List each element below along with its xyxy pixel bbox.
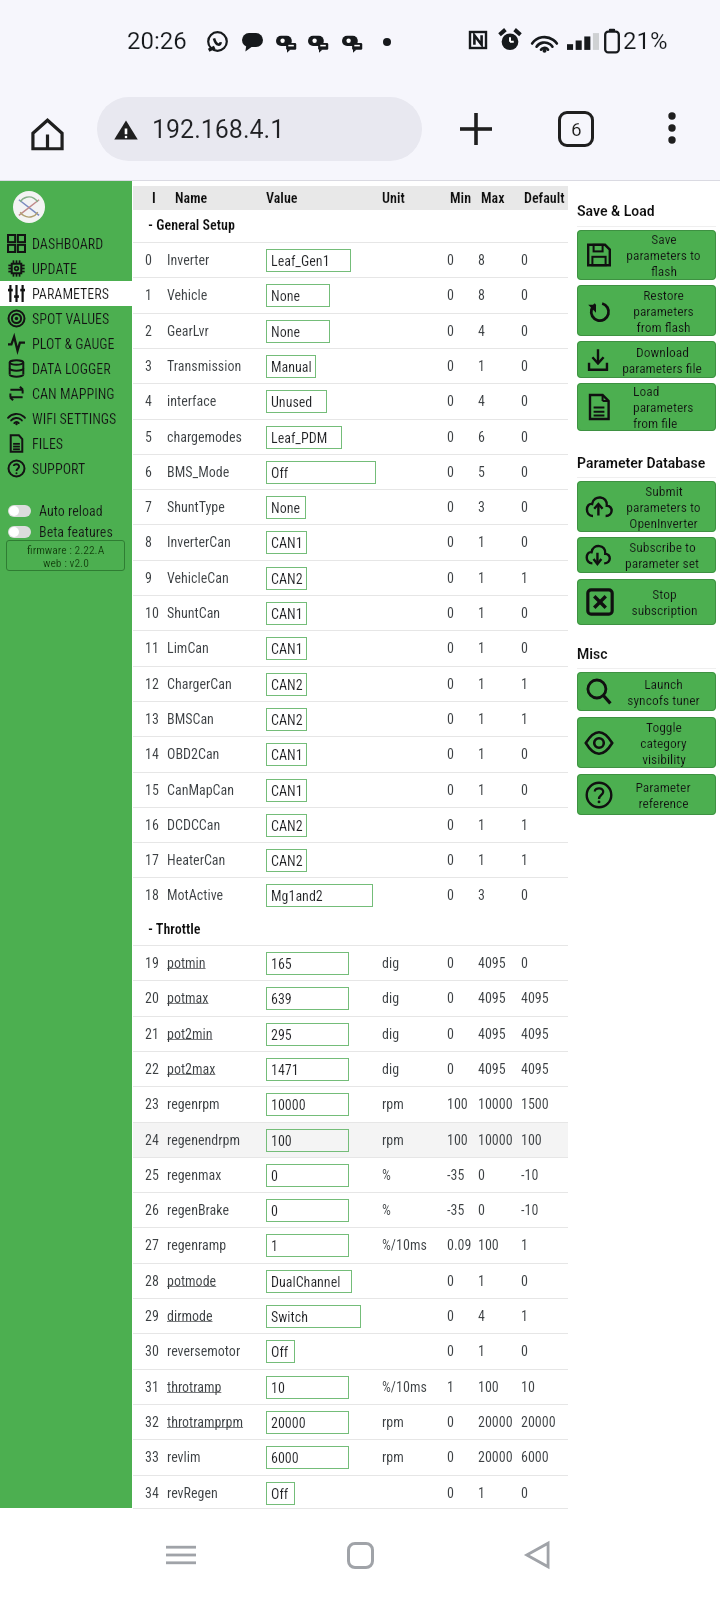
button[interactable]: 11 (133, 631, 568, 665)
button[interactable]: DATA LOGGER (0, 356, 132, 381)
button[interactable]: New tab (450, 103, 502, 155)
staticText: PARAMETERS (32, 286, 109, 302)
staticText: regenendrpm (167, 1132, 240, 1148)
button[interactable]: More options (646, 102, 698, 154)
staticText: 0 (447, 1308, 454, 1324)
button[interactable]: FILES (0, 431, 132, 456)
button[interactable]: 18 (133, 878, 568, 912)
staticText: 0 (447, 287, 454, 303)
button[interactable]: Auto reload (0, 500, 132, 521)
button[interactable]: 34 (133, 1476, 568, 1510)
button[interactable]: 20 (133, 981, 568, 1015)
staticText: pot2min (167, 1026, 213, 1042)
button[interactable]: 32 (133, 1405, 568, 1439)
staticText: web : v2.0 (43, 556, 89, 569)
button[interactable]: 31 (133, 1370, 568, 1404)
staticText: DASHBOARD (32, 236, 104, 252)
button[interactable]: 33 (133, 1440, 568, 1474)
button[interactable]: 1 (133, 278, 568, 312)
button[interactable]: SPOT VALUES (0, 306, 132, 331)
staticText: 0 (478, 1202, 485, 1218)
button[interactable]: 30 (133, 1334, 568, 1368)
button[interactable]: CAN MAPPING (0, 381, 132, 406)
button[interactable]: PARAMETERS (0, 281, 132, 306)
staticText: regenrpm (167, 1096, 220, 1112)
button[interactable]: 22 (133, 1052, 568, 1086)
staticText: 100 (478, 1237, 499, 1253)
staticText: 1 (521, 1237, 528, 1253)
button[interactable]: Home (22, 109, 72, 159)
button[interactable]: Stop (577, 579, 716, 625)
staticText: 0 (447, 534, 454, 550)
button[interactable]: Recent apps (151, 1525, 211, 1585)
button[interactable]: PLOT & GAUGE (0, 331, 132, 356)
button[interactable]: 15 (133, 773, 568, 807)
button[interactable]: Parameter (577, 774, 716, 815)
staticText: ShuntCan (167, 605, 221, 621)
staticText: rpm (382, 1414, 404, 1430)
button[interactable]: 24 (133, 1123, 568, 1157)
button[interactable]: 21 (133, 1017, 568, 1051)
staticText: GearLvr (167, 323, 209, 339)
button[interactable]: 25 (133, 1158, 568, 1192)
staticText: dig (382, 1061, 400, 1077)
button[interactable]: 19 (133, 946, 568, 980)
staticText: 10 (521, 1379, 535, 1395)
button[interactable]: Submit (577, 481, 716, 532)
button[interactable]: 0 (133, 243, 568, 277)
button[interactable]: 12 (133, 667, 568, 701)
staticText: regenramp (167, 1237, 227, 1253)
button[interactable]: 29 (133, 1299, 568, 1333)
button[interactable]: 27 (133, 1228, 568, 1262)
staticText: visibility (642, 751, 686, 767)
staticText: 6 (478, 429, 485, 445)
button[interactable]: 4 (133, 384, 568, 418)
button[interactable]: Home (330, 1525, 390, 1585)
button[interactable]: Launch (577, 672, 716, 711)
staticText: Auto reload (39, 503, 103, 519)
button[interactable]: 16 (133, 808, 568, 842)
button[interactable]: 8 (133, 525, 568, 559)
staticText: 0 (521, 955, 528, 971)
staticText: CAN1 (271, 783, 303, 799)
button[interactable]: Restore (577, 285, 716, 336)
staticText: 23 (145, 1096, 159, 1112)
button[interactable]: 23 (133, 1087, 568, 1121)
staticText: dig (382, 990, 400, 1006)
button[interactable]: WIFI SETTINGS (0, 406, 132, 431)
staticText: 1 (478, 640, 485, 656)
button[interactable]: 6 (133, 455, 568, 489)
staticText: 100 (447, 1132, 468, 1148)
staticText: Off (271, 1486, 289, 1502)
button[interactable]: UPDATE (0, 256, 132, 281)
button[interactable]: SUPPORT (0, 456, 132, 481)
staticText: WIFI SETTINGS (32, 411, 117, 427)
button[interactable]: 14 (133, 737, 568, 771)
staticText: 1 (478, 1273, 485, 1289)
button[interactable]: 7 (133, 490, 568, 524)
button[interactable]: DASHBOARD (0, 231, 132, 256)
button[interactable]: 28 (133, 1264, 568, 1298)
staticText: 0 (447, 323, 454, 339)
staticText: CAN1 (271, 641, 303, 657)
button[interactable]: 10 (133, 596, 568, 630)
staticText: 4095 (478, 1061, 506, 1077)
button[interactable]: Toggle (577, 717, 716, 768)
button[interactable]: Save (577, 230, 716, 280)
button[interactable]: Beta features (0, 521, 132, 542)
button[interactable]: Search or type URL (97, 97, 422, 161)
button[interactable]: 13 (133, 702, 568, 736)
staticText: LimCan (167, 640, 209, 656)
button[interactable]: 26 (133, 1193, 568, 1227)
button[interactable]: Download (577, 341, 716, 378)
button[interactable]: 9 (133, 561, 568, 595)
button[interactable]: 5 (133, 420, 568, 454)
button[interactable]: 3 (133, 349, 568, 383)
button[interactable]: Tabs, 6 open (550, 103, 602, 155)
button[interactable]: 17 (133, 843, 568, 877)
button[interactable]: Subscribe to (577, 537, 716, 573)
button[interactable]: Load (577, 383, 716, 431)
staticText: 1 (521, 1308, 528, 1324)
button[interactable]: Back (508, 1525, 568, 1585)
button[interactable]: 2 (133, 314, 568, 348)
